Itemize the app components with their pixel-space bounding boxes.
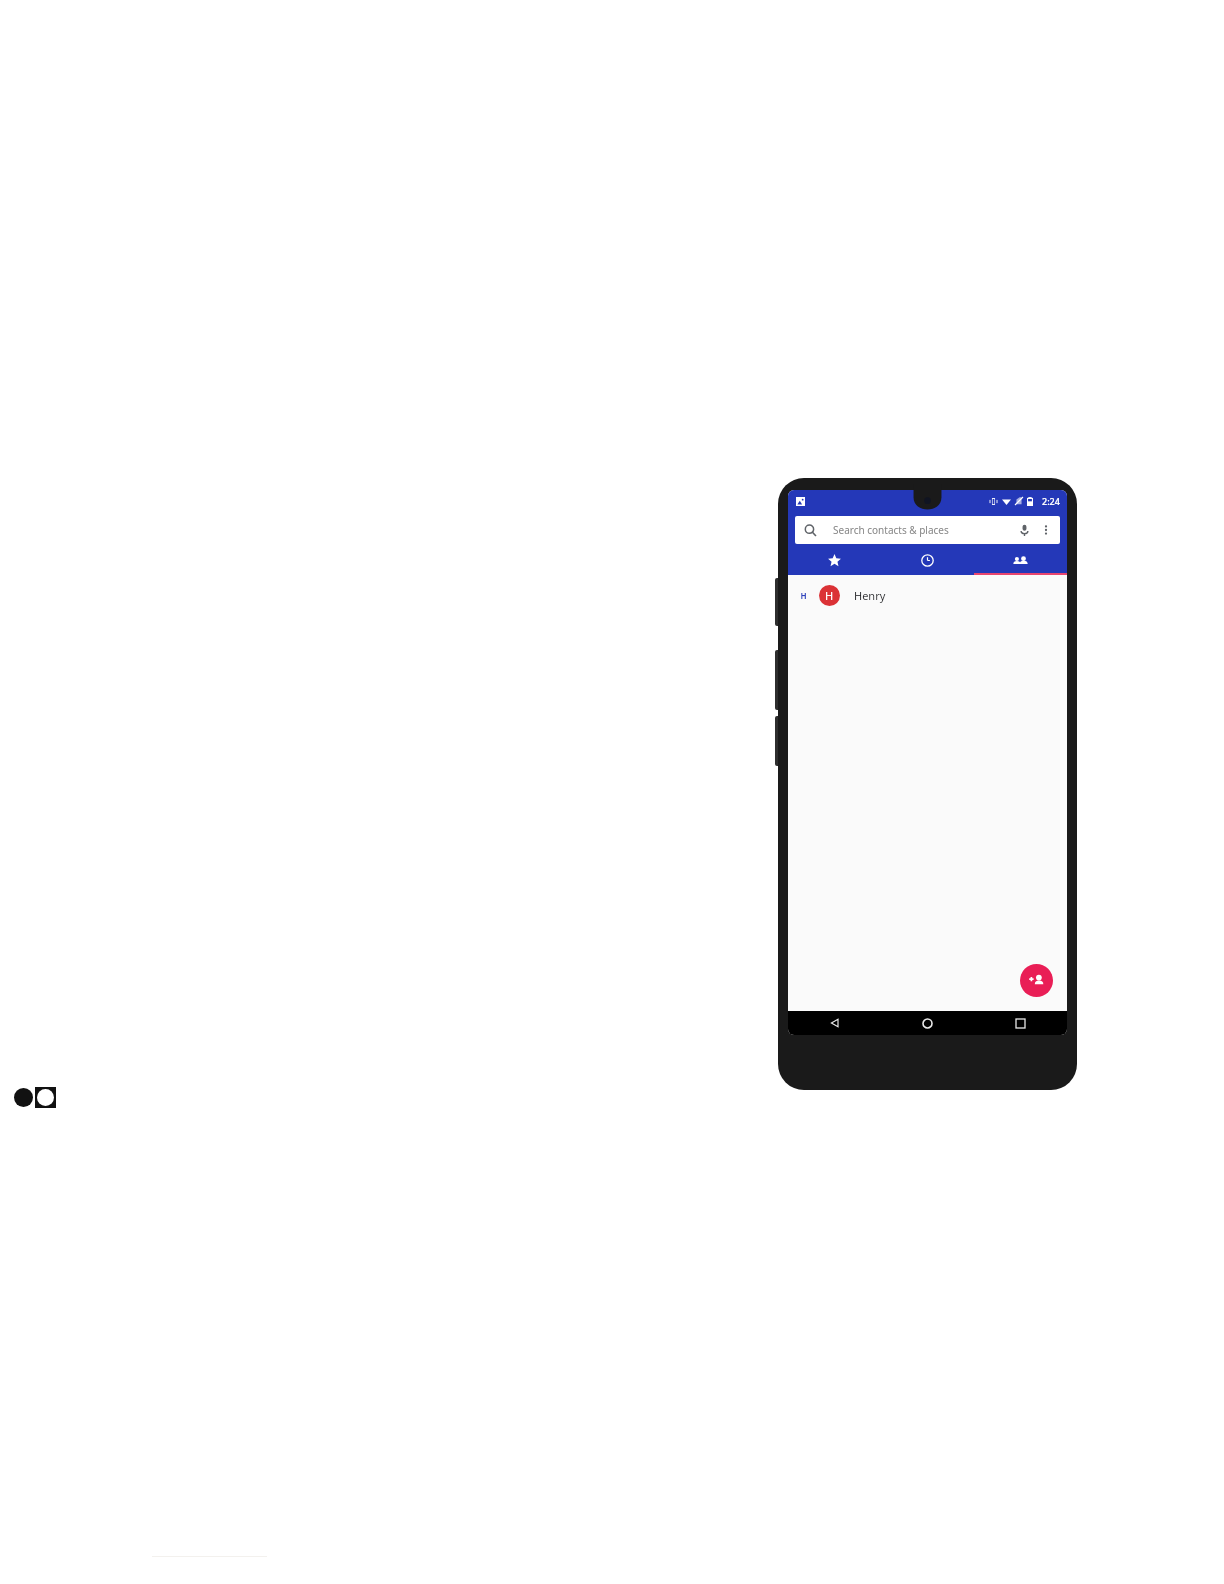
button[interactable]: Back	[788, 1011, 881, 1035]
staticText: 2:24	[1042, 495, 1060, 507]
button[interactable]: Recent apps	[974, 1011, 1067, 1035]
button[interactable]: Voice search	[1013, 519, 1035, 541]
button[interactable]: Home	[881, 1011, 974, 1035]
button[interactable]: Contacts	[974, 548, 1067, 573]
button[interactable]: Recents	[881, 548, 974, 573]
button[interactable]: Favorites	[788, 548, 881, 573]
button[interactable]: More options	[1035, 519, 1057, 541]
staticText: Search contacts & places	[833, 523, 949, 537]
staticText: Henry	[854, 588, 886, 603]
staticText: H	[825, 588, 834, 603]
button[interactable]: H	[788, 575, 1067, 615]
button[interactable]: Add contact	[1020, 964, 1053, 997]
staticText: H	[800, 590, 807, 601]
button[interactable]: Search contacts & places	[795, 516, 1060, 544]
